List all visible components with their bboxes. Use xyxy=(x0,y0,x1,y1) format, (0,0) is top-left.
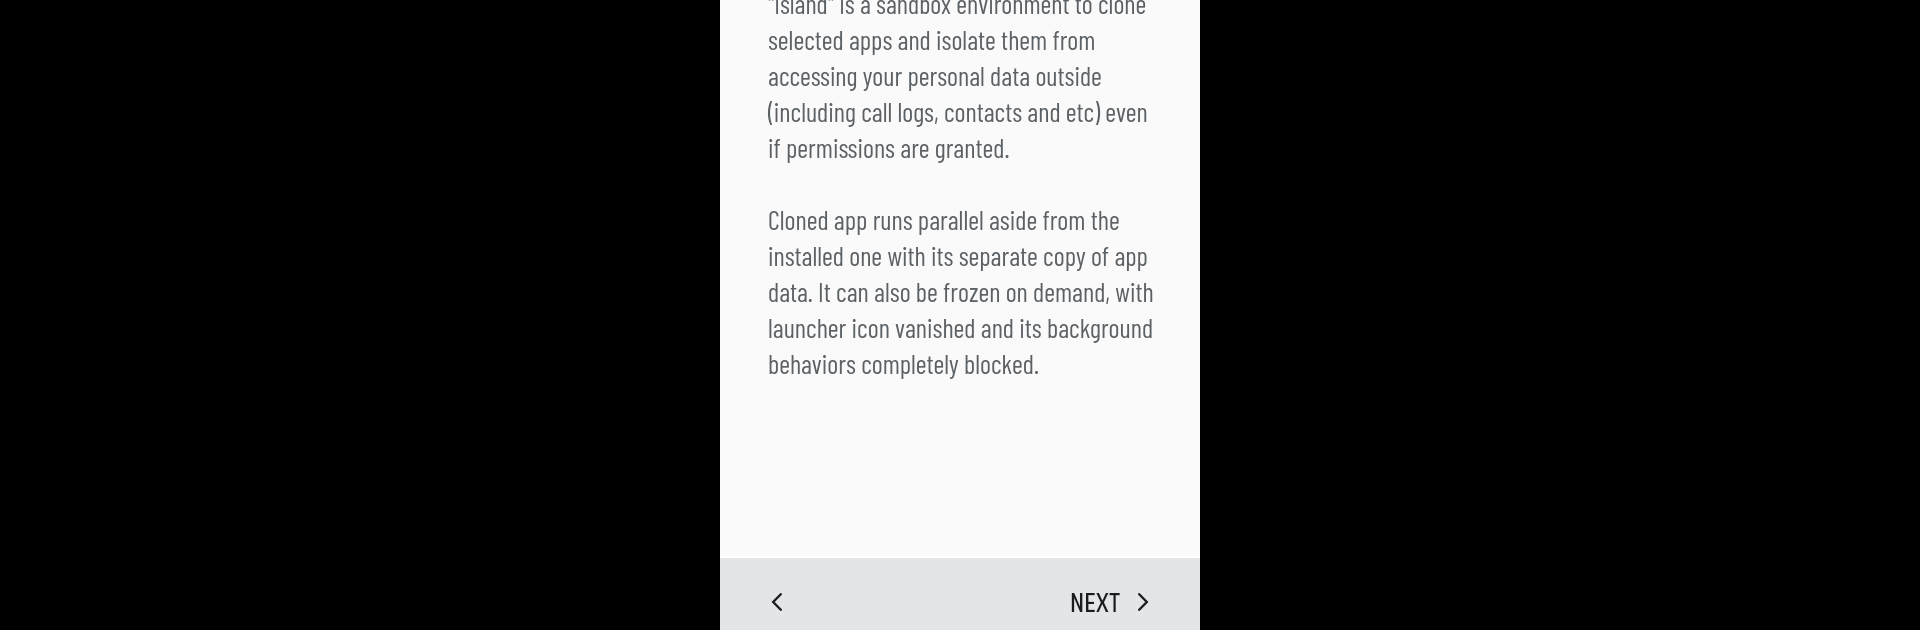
button[interactable]: Back xyxy=(757,582,797,622)
staticText: "Island" is a sandbox environment to clo… xyxy=(768,0,1158,379)
button[interactable]: NEXT xyxy=(1054,571,1200,630)
staticText: NEXT xyxy=(1070,581,1121,623)
